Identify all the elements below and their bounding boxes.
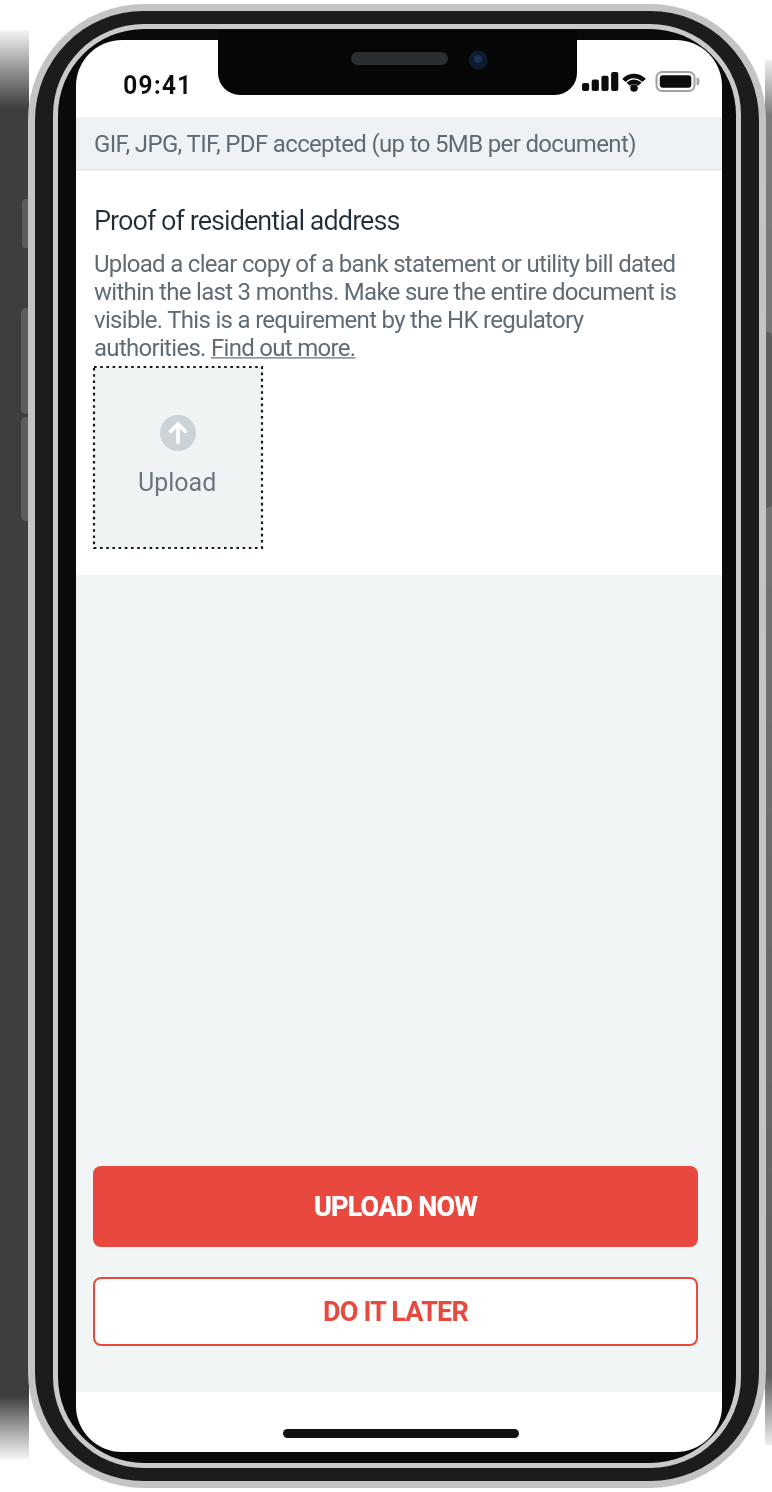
button[interactable]: UPLOAD NOW <box>93 1166 698 1247</box>
staticText: Upload <box>138 468 217 497</box>
button[interactable] <box>94 367 262 548</box>
staticText: 09:41 <box>123 71 193 100</box>
button[interactable] <box>210 335 353 362</box>
button[interactable]: DO IT LATER <box>93 1277 698 1346</box>
staticText: DO IT LATER <box>323 1296 468 1328</box>
staticText: Upload a clear copy of a bank statement … <box>94 250 677 362</box>
staticText: GIF, JPG, TIF, PDF accepted (up to 5MB p… <box>94 130 636 158</box>
staticText: Proof of residential address <box>94 205 400 237</box>
staticText: UPLOAD NOW <box>314 1191 478 1223</box>
